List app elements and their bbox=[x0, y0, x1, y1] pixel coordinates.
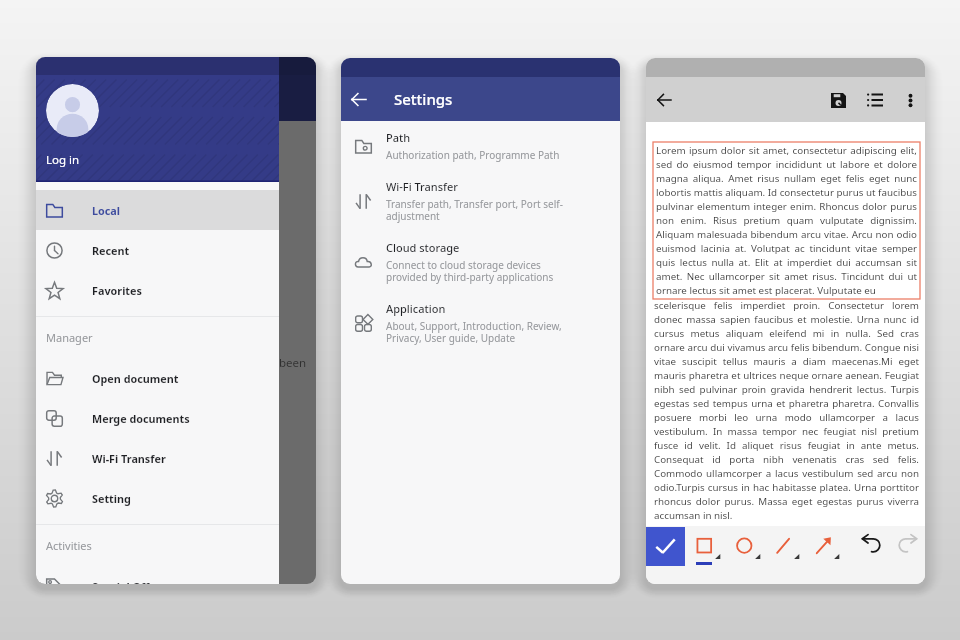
button[interactable]: Save bbox=[824, 86, 852, 114]
button[interactable]: Wi-Fi Transfer bbox=[341, 172, 620, 233]
staticText: Application bbox=[386, 301, 446, 316]
button[interactable]: Wi-Fi Transfer bbox=[36, 438, 279, 478]
staticText: About, Support, Introduction, Review, Pr… bbox=[386, 319, 564, 345]
staticText: Manager bbox=[46, 330, 93, 345]
staticText: Activities bbox=[46, 538, 92, 553]
staticText: Open document bbox=[92, 371, 179, 386]
button[interactable]: Cloud storage bbox=[341, 233, 620, 294]
button[interactable]: Redo bbox=[892, 528, 924, 560]
button[interactable]: Favorites bbox=[36, 270, 279, 310]
button[interactable]: Arrow bbox=[811, 527, 844, 571]
button[interactable]: Setting bbox=[36, 478, 279, 518]
staticText: Settings bbox=[394, 89, 453, 109]
button[interactable]: More options bbox=[898, 88, 922, 112]
staticText: Log in bbox=[46, 152, 80, 168]
button[interactable]: Line bbox=[771, 527, 804, 571]
button[interactable]: Back bbox=[346, 87, 370, 111]
staticText: scelerisque felis imperdiet proin. Conse… bbox=[654, 299, 919, 522]
staticText: Wi-Fi Transfer bbox=[92, 451, 166, 466]
button[interactable]: Undo bbox=[854, 528, 886, 560]
staticText: Authorization path, Programme Path bbox=[386, 148, 560, 162]
staticText: Local bbox=[92, 203, 121, 218]
staticText: Lorem ipsum dolor sit amet, consectetur … bbox=[656, 144, 917, 297]
button[interactable]: Done bbox=[646, 527, 685, 566]
button[interactable]: Back bbox=[652, 88, 676, 112]
staticText: Favorites bbox=[92, 283, 142, 298]
button[interactable]: Local bbox=[36, 190, 279, 230]
button[interactable]: Special Offer bbox=[36, 566, 279, 584]
staticText: Setting bbox=[92, 491, 131, 506]
button[interactable]: Path bbox=[341, 123, 620, 172]
staticText: Connect to cloud storage devices provide… bbox=[386, 258, 564, 284]
staticText: Cloud storage bbox=[386, 240, 460, 255]
staticText: Path bbox=[386, 130, 411, 145]
button[interactable]: Recent bbox=[36, 230, 279, 270]
staticText: Merge documents bbox=[92, 411, 190, 426]
staticText: Wi-Fi Transfer bbox=[386, 179, 458, 194]
staticText: Special Offer bbox=[92, 579, 161, 584]
button[interactable]: Application bbox=[341, 294, 620, 355]
staticText: been bbox=[279, 355, 307, 371]
button[interactable]: Open document bbox=[36, 358, 279, 398]
staticText: Recent bbox=[92, 243, 130, 258]
staticText: Transfer path, Transfer port, Port self-… bbox=[386, 197, 564, 223]
button[interactable]: Ellipse bbox=[732, 527, 765, 571]
button[interactable]: Rectangle bbox=[692, 527, 725, 571]
button[interactable]: List bbox=[861, 86, 889, 114]
button[interactable]: Merge documents bbox=[36, 398, 279, 438]
